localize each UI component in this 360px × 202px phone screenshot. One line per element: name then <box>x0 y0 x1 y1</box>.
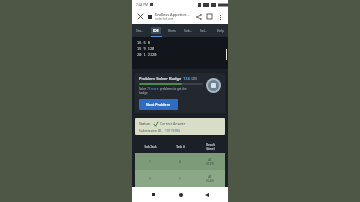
staticText: Solve <box>139 87 147 91</box>
button[interactable]: Hints <box>164 24 180 37</box>
button[interactable]: Recent apps <box>148 189 159 200</box>
staticText: Endless Appetice... <box>155 12 190 17</box>
staticText: 7:44 PM <box>136 3 149 7</box>
button[interactable]: More options <box>215 12 225 22</box>
staticText: 20 1 2120 <box>137 52 157 57</box>
staticText: 0 <box>179 160 181 164</box>
button[interactable]: Sta... <box>132 24 148 37</box>
button[interactable]: Close <box>135 11 146 22</box>
staticText: Sub-Task <box>144 145 157 149</box>
staticText: Status: <box>139 121 151 126</box>
staticText: Result (time) <box>206 143 215 151</box>
button[interactable]: Next Problem <box>139 99 178 110</box>
staticText: AC (0.40) <box>206 175 214 183</box>
staticText: 10173906 <box>165 128 181 132</box>
button[interactable]: Tabs <box>204 11 215 22</box>
staticText: Problem Solver Badge <box>139 76 182 81</box>
staticText: Sta... <box>136 29 144 33</box>
staticText: 1 <box>149 160 151 164</box>
staticText: badge <box>139 91 148 95</box>
staticText: Sol... <box>200 29 208 33</box>
staticText: Sub... <box>184 29 193 33</box>
button[interactable]: Home <box>175 189 186 200</box>
staticText: IDE <box>153 28 159 33</box>
staticText: 15 9 120 <box>137 46 155 51</box>
staticText: problems to get the <box>159 87 187 91</box>
staticText: Hints <box>168 29 176 33</box>
staticText: Help <box>217 29 224 33</box>
staticText: 1 <box>179 177 181 181</box>
staticText: codechef.com <box>155 17 174 21</box>
staticText: Next Problem <box>146 102 171 107</box>
staticText: Task # <box>176 145 185 149</box>
staticText: Correct Answer <box>160 121 186 126</box>
staticText: Submission ID: <box>139 128 163 132</box>
button[interactable]: Help <box>212 24 228 37</box>
staticText: 76 more <box>147 87 159 91</box>
staticText: AC (0.39) <box>206 158 214 166</box>
staticText: 16 5 8 <box>137 40 150 45</box>
button[interactable]: Sub... <box>180 24 196 37</box>
button[interactable]: Back <box>201 189 212 200</box>
button[interactable]: Share <box>193 11 204 22</box>
staticText: 134 <box>183 76 190 81</box>
staticText: 1 <box>149 177 151 181</box>
staticText: /200 <box>190 77 198 81</box>
button[interactable]: Sol... <box>196 24 212 37</box>
button[interactable]: 10173906 <box>165 128 181 132</box>
button[interactable]: IDE <box>148 24 164 37</box>
